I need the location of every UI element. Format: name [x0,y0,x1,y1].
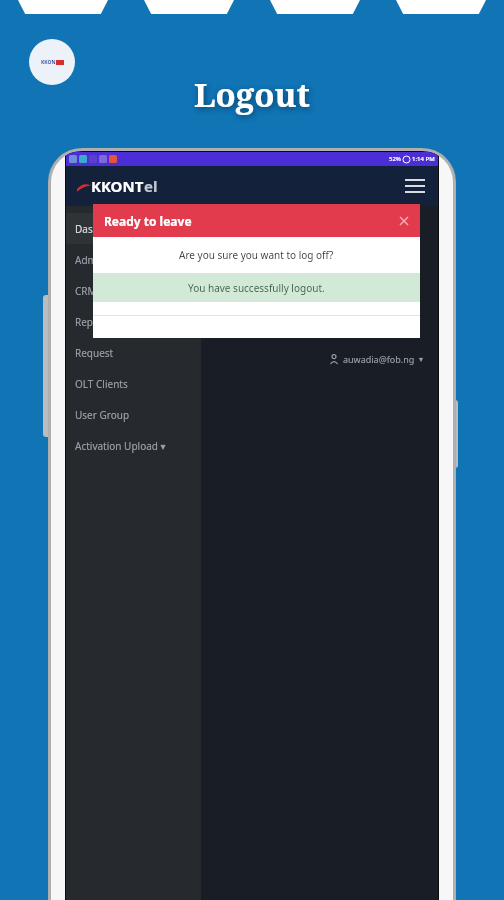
button[interactable]: Admin [66,244,201,275]
button[interactable]: App logo [29,39,75,85]
button[interactable]: User Group [66,399,201,430]
staticText: User Group [75,408,130,422]
button[interactable]: CRM [66,275,201,306]
staticText: CRM [75,284,97,298]
staticText: Request [75,346,114,360]
staticText: 52% [389,155,401,163]
staticText: Dashboard [75,222,127,236]
staticText: Report [75,315,107,329]
button[interactable]: Dashboard [66,213,201,244]
staticText: OLT Clients [75,377,128,391]
staticText: el [144,176,158,196]
button[interactable]: Report [66,306,201,337]
button[interactable]: Request [66,337,201,368]
staticText: Logout [0,72,504,117]
staticText: Admin [75,253,106,267]
button[interactable]: auwadia@fob.ng [329,353,424,365]
staticText: Ready to leave [104,213,192,229]
staticText: KKON [41,59,56,66]
staticText: Activation Upload ▾ [75,439,166,453]
button[interactable]: Activation Upload ▾ [66,430,201,461]
button[interactable]: KKONT [77,176,158,196]
staticText: ▾ [419,355,424,364]
staticText: You have successfully logout. [188,281,325,295]
staticText: Are you sure you want to log off? [179,248,334,262]
staticText: KKONT [91,176,144,196]
staticText: 1:14 PM [412,155,435,163]
button[interactable]: Open navigation menu [404,175,426,197]
button[interactable]: Close dialog [395,212,413,230]
button[interactable]: OLT Clients [66,368,201,399]
staticText: auwadia@fob.ng [343,353,415,365]
